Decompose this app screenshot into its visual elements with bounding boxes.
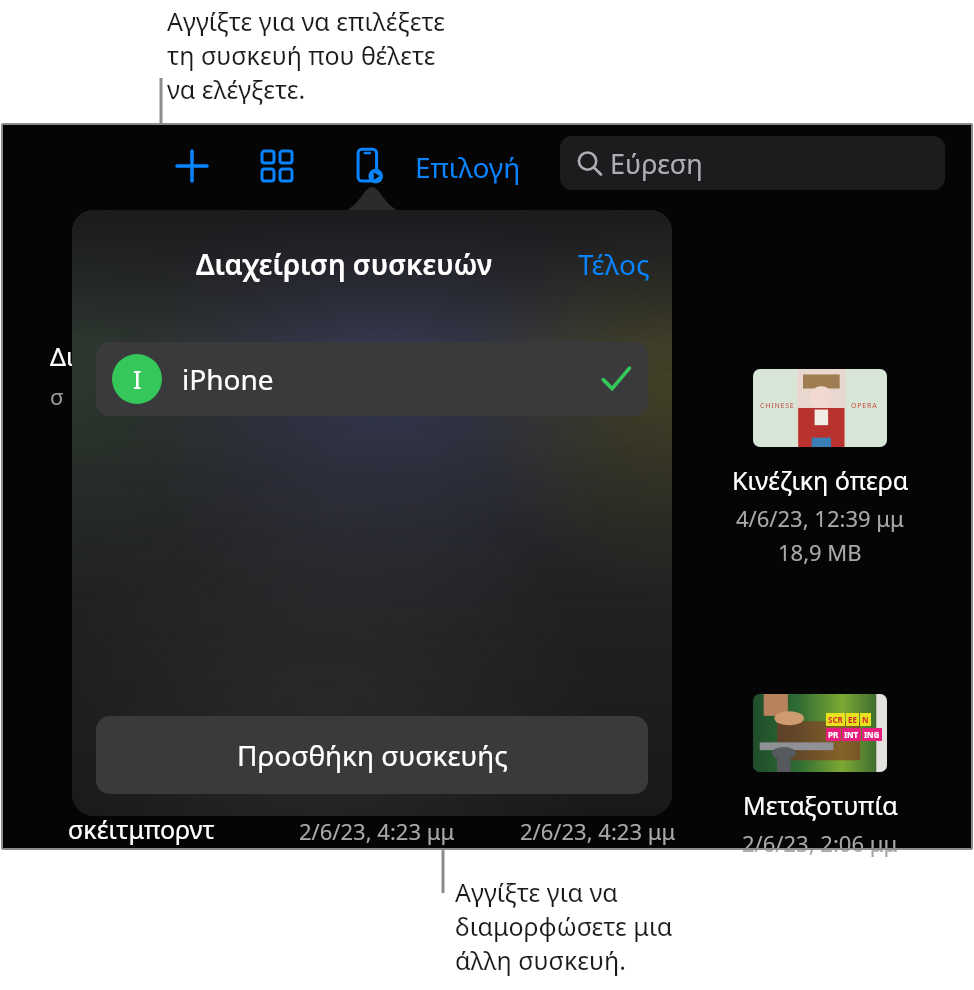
staticText: σ — [50, 381, 64, 411]
button[interactable]: CHINESE — [753, 369, 887, 447]
button[interactable]: I — [96, 342, 648, 416]
staticText: 2/6/23, 4:23 μμ — [299, 816, 455, 846]
staticText: I — [133, 362, 142, 396]
staticText: διαμορφώσετε μια — [455, 909, 673, 943]
staticText: PR — [828, 729, 839, 740]
button[interactable]: SCR — [753, 694, 887, 772]
staticText: Δι — [50, 339, 75, 373]
staticText: EE — [848, 714, 857, 725]
staticText: τη συσκευή που θέλετε — [167, 38, 436, 72]
staticText: N — [862, 714, 869, 725]
staticText: INT — [844, 729, 859, 740]
staticText: Διαχείριση συσκευών — [196, 245, 493, 283]
staticText: Μεταξοτυπία — [743, 788, 898, 822]
staticText: CHINESE — [760, 401, 795, 411]
staticText: Επιλογή — [415, 148, 521, 186]
staticText: Αγγίξτε για να — [455, 875, 618, 909]
staticText: Τέλος — [578, 245, 650, 283]
staticText: 18,9 MB — [778, 537, 862, 567]
staticText: SCR — [828, 714, 843, 725]
button[interactable]: Τέλος — [578, 245, 650, 283]
staticText: ING — [864, 729, 880, 740]
staticText: 2/6/23, 2:06 μμ — [742, 828, 898, 858]
staticText: άλλη συσκευή. — [455, 943, 626, 977]
staticText: OPERA — [851, 401, 878, 411]
staticText: σκέιτμπορντ — [68, 812, 215, 846]
button[interactable]: Διαχείριση συσκευών — [337, 134, 401, 198]
button[interactable]: Εύρεση — [560, 136, 945, 190]
staticText: Προσθήκη συσκευής — [237, 736, 508, 774]
staticText: Κινέζικη όπερα — [732, 463, 909, 497]
staticText: να ελέγξετε. — [167, 72, 306, 106]
staticText: 4/6/23, 12:39 μμ — [736, 503, 904, 533]
staticText: Αγγίξτε για να επιλέξετε — [167, 4, 445, 38]
staticText: iPhone — [182, 360, 274, 398]
button[interactable]: Προβολή πλέγματος — [247, 136, 307, 196]
button[interactable]: Προσθήκη — [162, 136, 222, 196]
staticText: 2/6/23, 4:23 μμ — [520, 816, 676, 846]
staticText: Εύρεση — [610, 145, 703, 182]
button[interactable]: Προσθήκη συσκευής — [96, 716, 648, 794]
button[interactable]: Επιλογή — [415, 148, 521, 186]
